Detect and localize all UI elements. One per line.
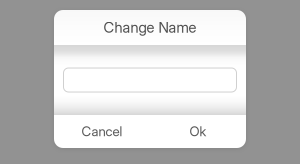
staticText: Ok — [189, 123, 206, 139]
staticText: Cancel — [81, 123, 122, 139]
staticText: Change Name — [103, 19, 196, 36]
button[interactable]: Cancel — [54, 115, 150, 148]
button[interactable]: Ok — [150, 115, 246, 148]
